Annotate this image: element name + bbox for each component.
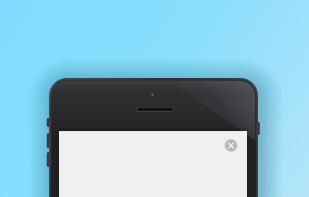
button[interactable]: Close xyxy=(223,137,240,154)
